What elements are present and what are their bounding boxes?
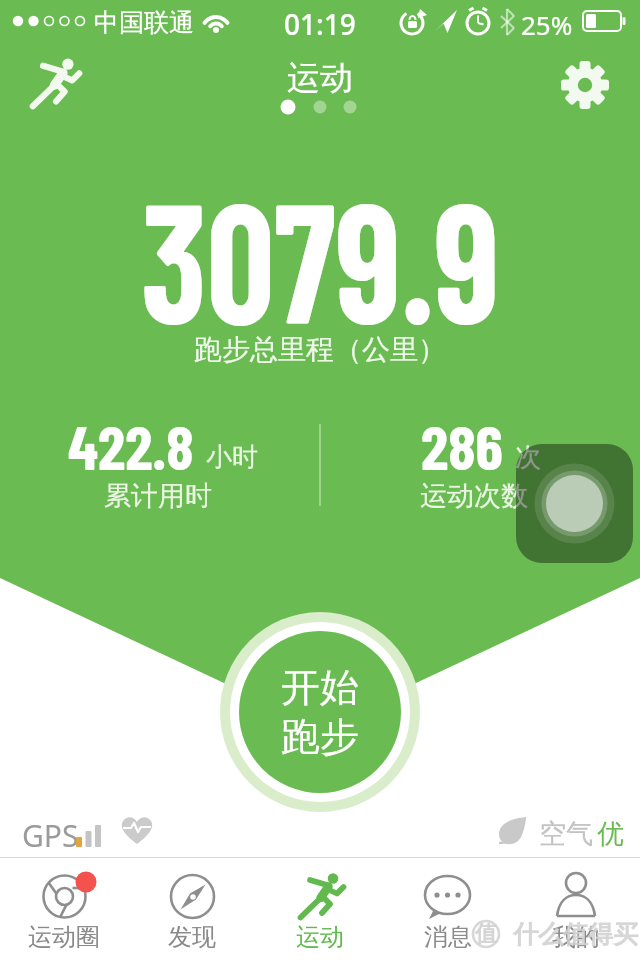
staticText: 运动	[287, 57, 353, 99]
staticText: 跑步	[281, 712, 359, 761]
staticText: 运动圈	[28, 922, 100, 952]
button[interactable]: 运动	[256, 858, 384, 960]
staticText: 运动	[296, 922, 344, 952]
button[interactable]: 我的	[512, 858, 640, 960]
staticText: 次	[515, 441, 541, 474]
button[interactable]	[26, 52, 86, 112]
button[interactable]: 运动圈	[0, 858, 128, 960]
staticText: 发现	[168, 922, 216, 952]
staticText: 跑步总里程（公里）	[194, 332, 446, 367]
staticText: 422.8	[68, 408, 194, 482]
staticText: 中国联通	[94, 7, 194, 38]
staticText: 运动次数	[420, 479, 528, 513]
staticText: 286	[421, 408, 503, 482]
staticText: 消息	[424, 922, 472, 952]
staticText: 01:19	[284, 5, 356, 43]
button[interactable]: 消息	[384, 858, 512, 960]
staticText: 25%	[521, 7, 573, 42]
staticText: 小时	[206, 441, 258, 474]
staticText: 3079.9	[141, 156, 500, 358]
button[interactable]: 开始	[220, 612, 420, 812]
staticText: 什么值得买	[513, 919, 638, 950]
staticText: GPS	[22, 815, 79, 856]
staticText: 累计用时	[104, 479, 212, 513]
staticText: 值	[475, 920, 497, 948]
staticText: 空气	[539, 817, 593, 851]
button[interactable]	[558, 58, 612, 112]
staticText: 我的	[552, 922, 600, 952]
button[interactable]: 发现	[128, 858, 256, 960]
staticText: 优	[597, 817, 624, 851]
button[interactable]	[516, 444, 633, 563]
staticText: 开始	[281, 663, 359, 712]
